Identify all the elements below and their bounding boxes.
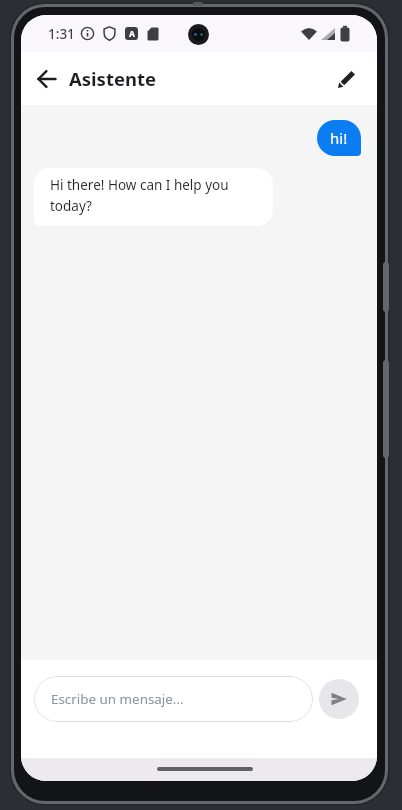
button[interactable]: [319, 679, 359, 719]
staticText: hi!: [330, 128, 348, 148]
staticText: A: [129, 28, 135, 40]
staticText: Hi there! How can I help you today?: [50, 176, 229, 215]
button[interactable]: hi!: [317, 120, 361, 156]
button[interactable]: [35, 67, 59, 91]
staticText: Asistente: [69, 66, 157, 91]
staticText: Escribe un mensaje...: [51, 690, 184, 708]
button[interactable]: Escribe un mensaje...: [34, 676, 313, 722]
button[interactable]: [335, 67, 359, 91]
staticText: 1:31: [48, 25, 75, 43]
button[interactable]: Hi there! How can I help you today?: [34, 168, 273, 226]
